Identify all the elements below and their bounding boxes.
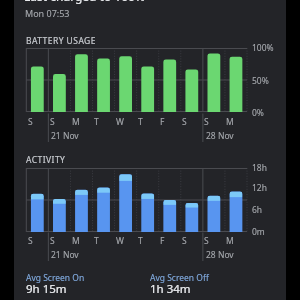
staticText: 28 Nov (206, 249, 234, 261)
staticText: 21 Nov (51, 249, 79, 261)
staticText: Avg Screen Off (150, 272, 209, 284)
staticText: 0m (252, 226, 265, 238)
staticText: T (138, 116, 143, 128)
staticText: F (160, 235, 165, 247)
staticText: 0% (252, 107, 264, 119)
staticText: W (116, 235, 124, 247)
staticText: ACTIVITY (26, 154, 66, 166)
staticText: F (160, 116, 165, 128)
staticText: M (226, 235, 234, 247)
staticText: S (204, 235, 209, 247)
staticText: T (138, 235, 143, 247)
staticText: Mon 07:53 (25, 7, 70, 19)
staticText: Avg Screen On (26, 272, 85, 284)
button[interactable]: Avg Screen On (26, 272, 85, 300)
staticText: S (50, 116, 55, 128)
staticText: T (94, 116, 99, 128)
button[interactable]: Avg Screen Off (150, 272, 209, 300)
button[interactable]: Last charged to 100% (24, 0, 145, 4)
staticText: S (28, 235, 33, 247)
staticText: S (28, 116, 33, 128)
staticText: S (182, 116, 187, 128)
staticText: S (204, 116, 209, 128)
staticText: W (116, 116, 124, 128)
staticText: 9h 15m (26, 281, 67, 297)
staticText: 18h (252, 162, 267, 174)
staticText: T (94, 235, 99, 247)
staticText: 100% (252, 42, 274, 54)
staticText: 50% (252, 75, 269, 87)
staticText: M (226, 116, 234, 128)
staticText: 12h (252, 182, 267, 194)
staticText: M (72, 116, 80, 128)
staticText: 21 Nov (51, 130, 79, 142)
staticText: S (182, 235, 187, 247)
staticText: BATTERY USAGE (26, 35, 96, 47)
staticText: S (50, 235, 55, 247)
staticText: 1h 34m (150, 281, 191, 297)
staticText: 6h (252, 204, 263, 216)
staticText: M (72, 235, 80, 247)
staticText: 28 Nov (206, 130, 234, 142)
